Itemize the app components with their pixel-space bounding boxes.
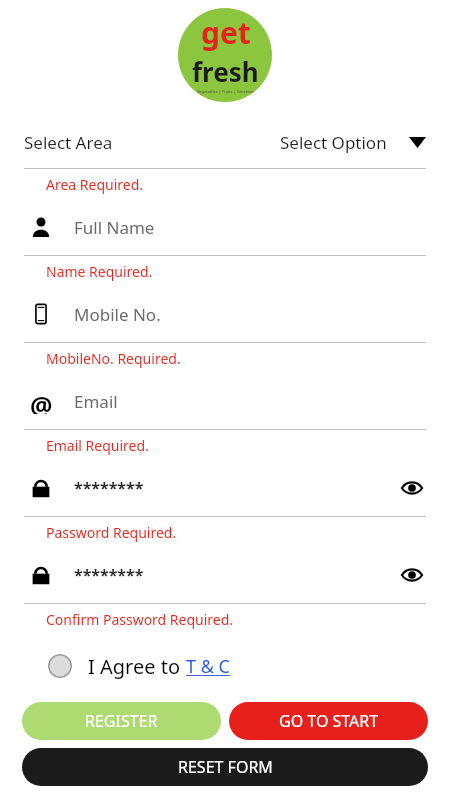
button[interactable]: T & C (186, 654, 230, 679)
staticText: fresh (192, 54, 259, 89)
staticText: MobileNo. Required. (46, 349, 181, 368)
button[interactable]: GO TO START (229, 702, 428, 740)
staticText: Email (74, 390, 118, 413)
button[interactable]: Show password (398, 474, 426, 502)
staticText: Password Required. (46, 523, 177, 542)
staticText: T & C (186, 654, 230, 679)
button[interactable]: Select Area (0, 116, 450, 168)
staticText: Select Area (24, 131, 113, 154)
staticText: ******** (74, 564, 144, 586)
staticText: RESET FORM (178, 756, 273, 778)
staticText: Email Required. (46, 436, 149, 455)
staticText: Confirm Password Required. (46, 610, 234, 629)
button[interactable]: RESET FORM (22, 748, 428, 786)
button[interactable]: @ (0, 373, 450, 429)
staticText: ******** (74, 477, 144, 499)
button[interactable]: Mobile No. (0, 286, 450, 342)
button[interactable]: I Agree to (0, 644, 450, 688)
staticText: @ (30, 388, 53, 414)
staticText: I Agree to (88, 653, 186, 680)
button[interactable]: ******** (0, 460, 450, 516)
button[interactable]: ******** (0, 547, 450, 603)
button[interactable]: Full Name (0, 199, 450, 255)
staticText: Name Required. (46, 262, 153, 281)
staticText: REGISTER (85, 710, 158, 732)
staticText: Full Name (74, 216, 155, 239)
staticText: Vegetables | Fruits | Groceries (197, 89, 255, 94)
staticText: Select Option (280, 131, 387, 154)
staticText: GO TO START (279, 710, 379, 732)
staticText: Area Required. (46, 175, 144, 194)
button[interactable]: REGISTER (22, 702, 221, 740)
button[interactable]: Show password (398, 561, 426, 589)
staticText: get (201, 12, 251, 53)
staticText: Mobile No. (74, 303, 161, 326)
